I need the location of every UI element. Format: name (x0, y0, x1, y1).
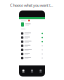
button[interactable] (21, 52, 43, 56)
button[interactable] (21, 40, 43, 44)
button[interactable]: Tab (28, 65, 36, 76)
button[interactable] (21, 56, 43, 60)
button[interactable] (21, 44, 43, 48)
button[interactable]: Tab (36, 65, 45, 76)
button[interactable]: Home tab (19, 65, 28, 76)
button[interactable] (21, 48, 43, 52)
button[interactable] (21, 31, 43, 35)
staticText: Choose what you want to follow (10, 3, 54, 8)
button[interactable] (21, 35, 43, 40)
